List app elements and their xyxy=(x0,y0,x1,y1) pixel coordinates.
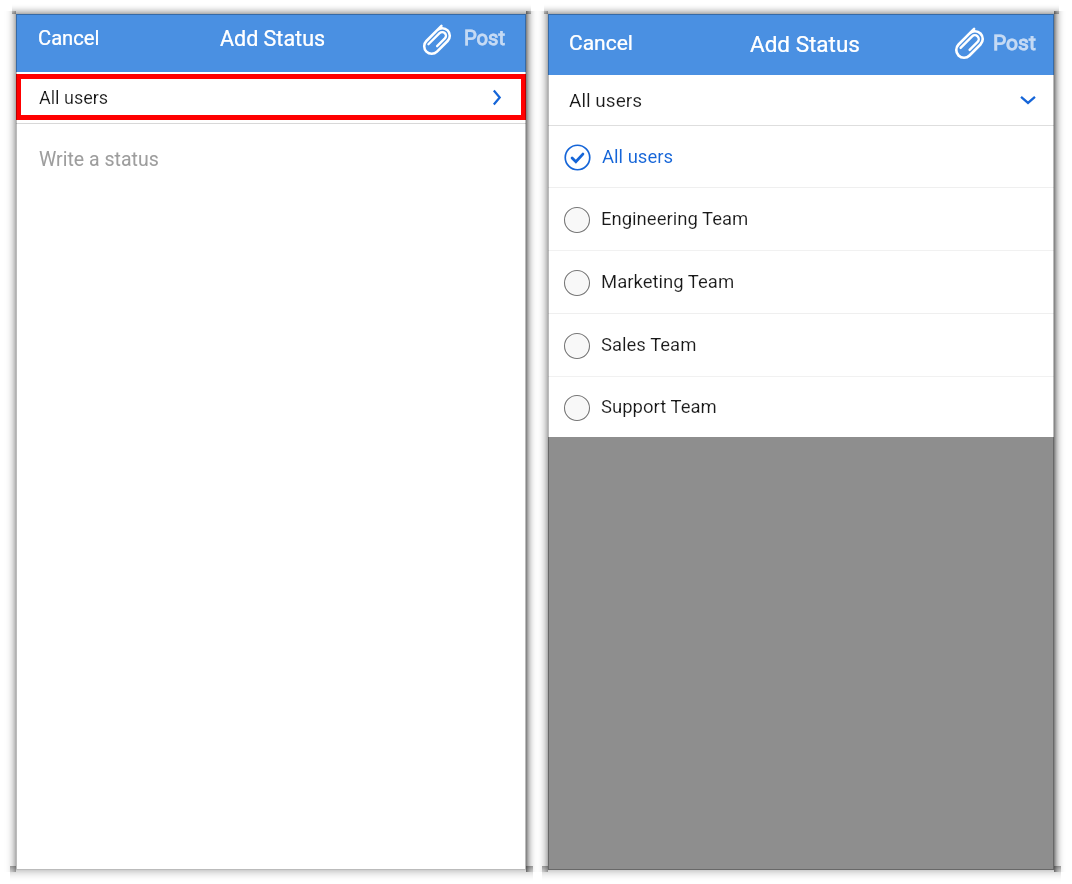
other: Attach file xyxy=(954,29,985,60)
button[interactable]: Attach file xyxy=(951,28,1054,59)
button[interactable]: Engineering Team xyxy=(548,188,1054,250)
staticText: Marketing Team xyxy=(601,271,735,293)
button[interactable]: All users xyxy=(21,79,521,115)
button[interactable]: All users xyxy=(548,75,1054,125)
staticText: Sales Team xyxy=(601,334,697,356)
staticText: Cancel xyxy=(38,26,100,50)
staticText: All users xyxy=(39,87,109,108)
button[interactable]: Cancel xyxy=(16,26,110,50)
staticText: Post xyxy=(993,31,1036,56)
other: Attach file xyxy=(422,26,452,56)
staticText: All users xyxy=(569,89,642,111)
staticText: Support Team xyxy=(601,396,717,418)
staticText: Add Status xyxy=(220,26,326,51)
button[interactable]: Support Team xyxy=(548,377,1054,437)
staticText: Post xyxy=(464,26,506,50)
button[interactable]: Attach file xyxy=(422,23,526,53)
button[interactable]: All users xyxy=(548,126,1054,187)
staticText: Write a status xyxy=(39,148,159,171)
staticText: Add Status xyxy=(750,31,860,57)
staticText: All users xyxy=(602,146,674,168)
button[interactable]: Cancel xyxy=(548,31,643,56)
button[interactable]: Sales Team xyxy=(548,314,1054,376)
staticText: Engineering Team xyxy=(601,208,749,230)
button[interactable]: Marketing Team xyxy=(548,251,1054,313)
staticText: Cancel xyxy=(569,31,633,56)
